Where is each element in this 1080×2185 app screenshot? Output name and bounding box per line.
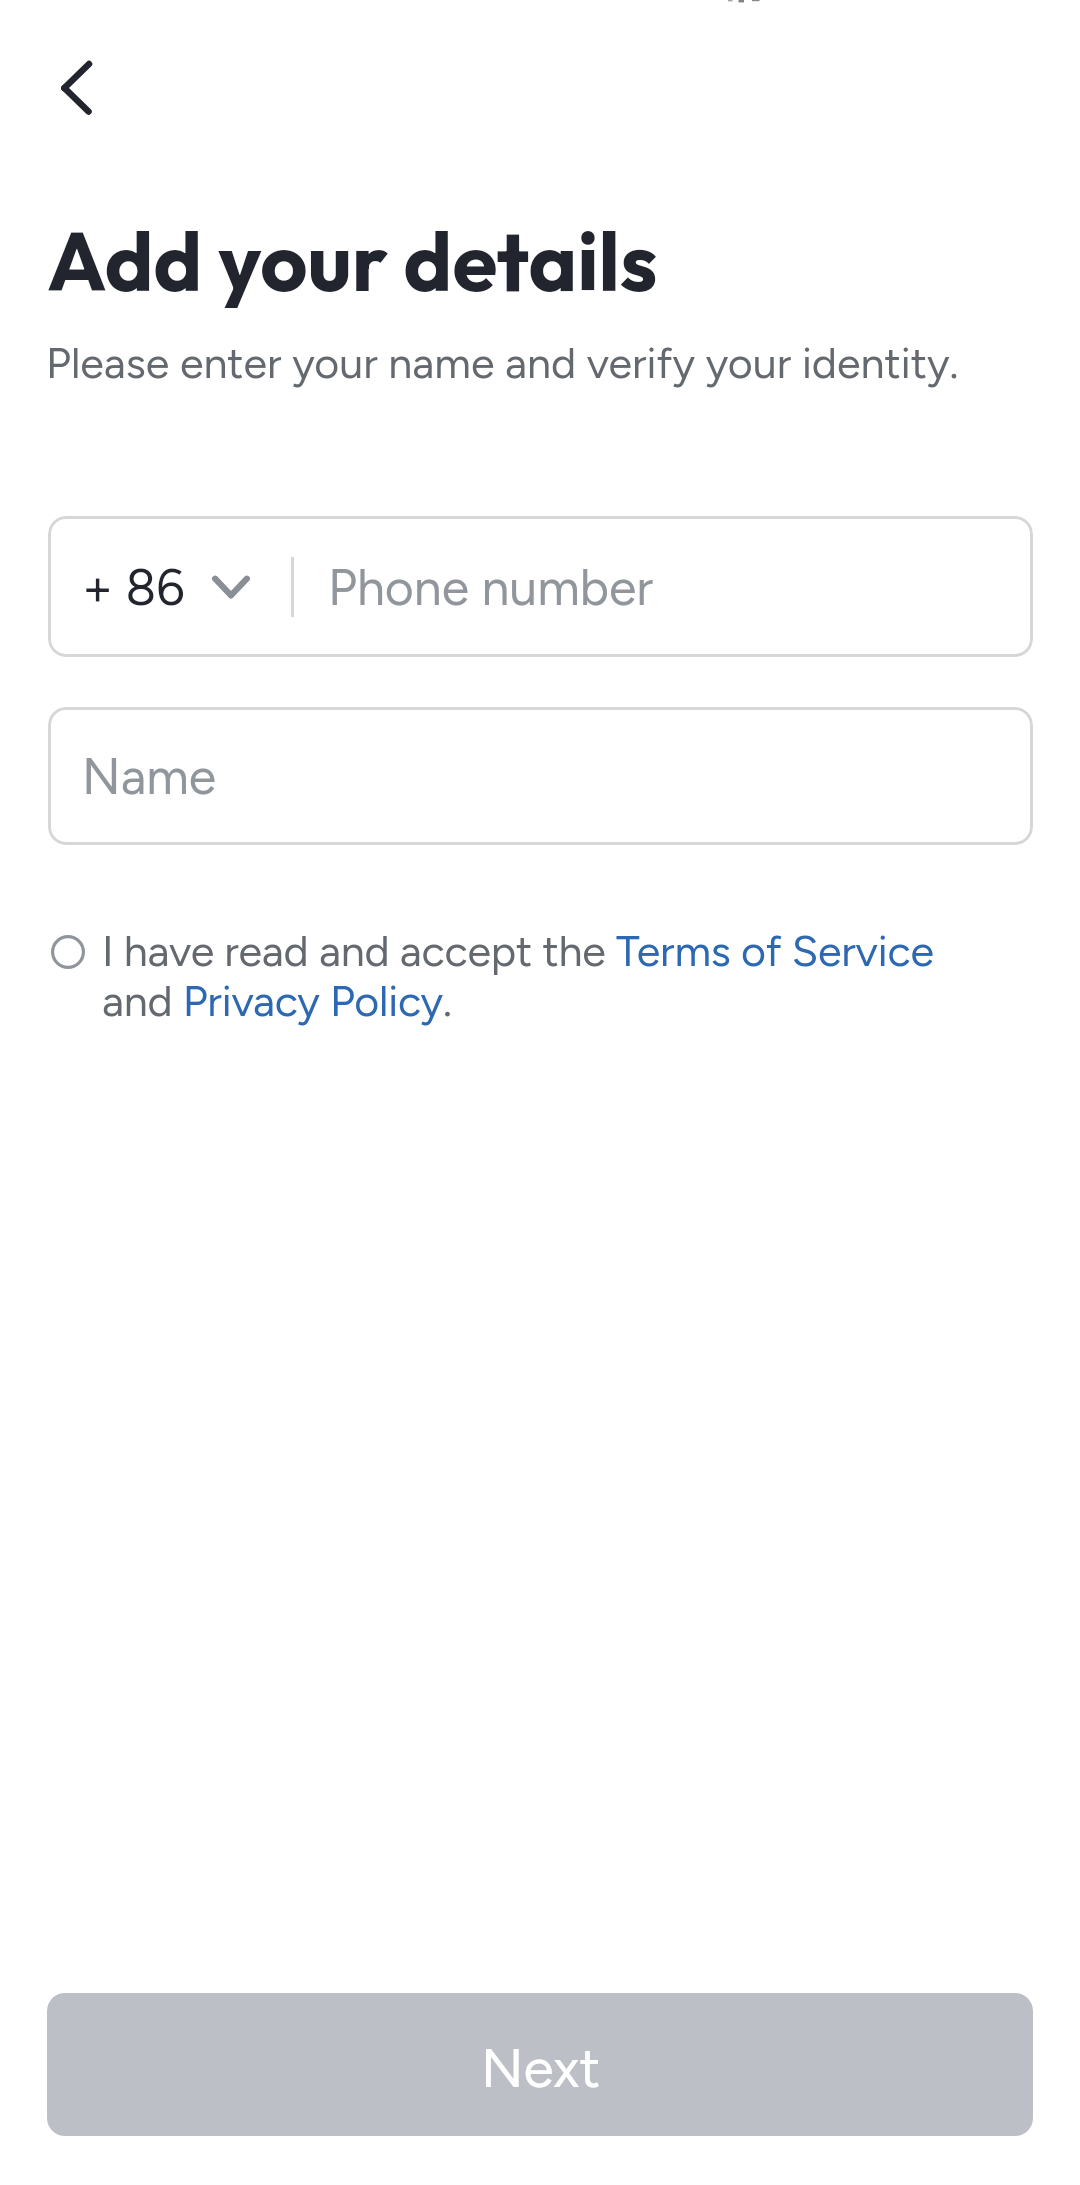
other: Accept terms [51, 935, 85, 969]
button[interactable]: + 86 [48, 516, 291, 657]
button[interactable]: Next [47, 1993, 1033, 2136]
staticText: Please enter your name and verify your i… [46, 337, 959, 389]
button[interactable]: Accept terms [51, 925, 941, 1026]
staticText: Phone number [328, 557, 654, 617]
staticText: I have read and accept the Terms of Serv… [102, 925, 941, 1026]
button[interactable]: Back [40, 44, 112, 116]
button[interactable]: Name [48, 707, 1033, 845]
staticText: Next [481, 2035, 601, 2101]
staticText: Add your details [47, 209, 658, 312]
staticText: + 86 [82, 557, 185, 617]
staticText: Name [82, 746, 217, 806]
